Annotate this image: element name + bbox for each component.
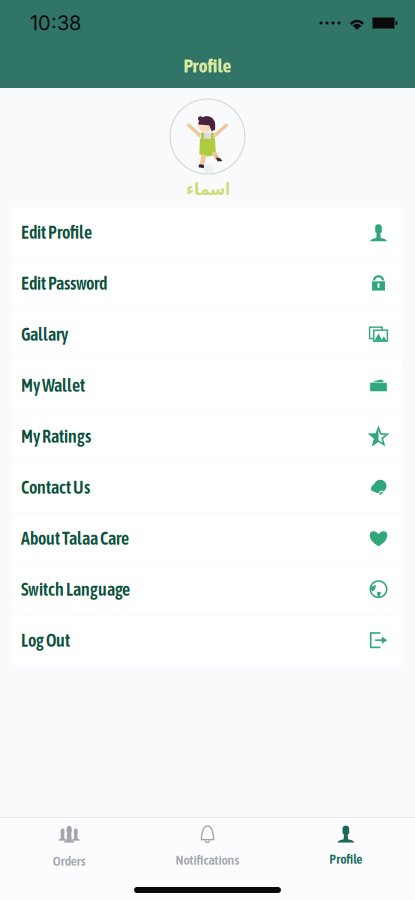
staticText: Edit Profile [21,222,92,242]
staticText: Switch Language [21,579,130,599]
button[interactable]: Notifications [138,824,277,868]
button[interactable]: Edit Profile [12,207,403,257]
button[interactable]: Log Out [12,615,403,665]
staticText: Log Out [21,630,70,650]
button[interactable]: Contact Us [12,462,403,512]
button[interactable]: Profile [0,46,415,88]
staticText: Notifications [175,852,239,868]
staticText: About Talaa Care [21,528,129,548]
staticText: Contact Us [21,477,90,497]
staticText: Gallary [21,324,68,344]
button[interactable]: About Talaa Care [12,513,403,563]
staticText: Edit Password [21,273,107,293]
staticText: My Wallet [21,375,85,395]
staticText: اسماء [185,179,229,199]
button[interactable]: Profile [277,824,415,868]
staticText: 10:38 [30,11,81,35]
button[interactable]: My Ratings [12,411,403,461]
staticText: My Ratings [21,426,91,446]
staticText: Profile [183,54,231,77]
button[interactable]: Orders [0,824,138,868]
button[interactable]: Edit Password [12,258,403,308]
button[interactable]: My Wallet [12,360,403,410]
staticText: Profile [329,851,362,867]
button[interactable]: Switch Language [12,564,403,614]
button[interactable]: Gallary [12,309,403,359]
staticText: Orders [53,853,86,869]
